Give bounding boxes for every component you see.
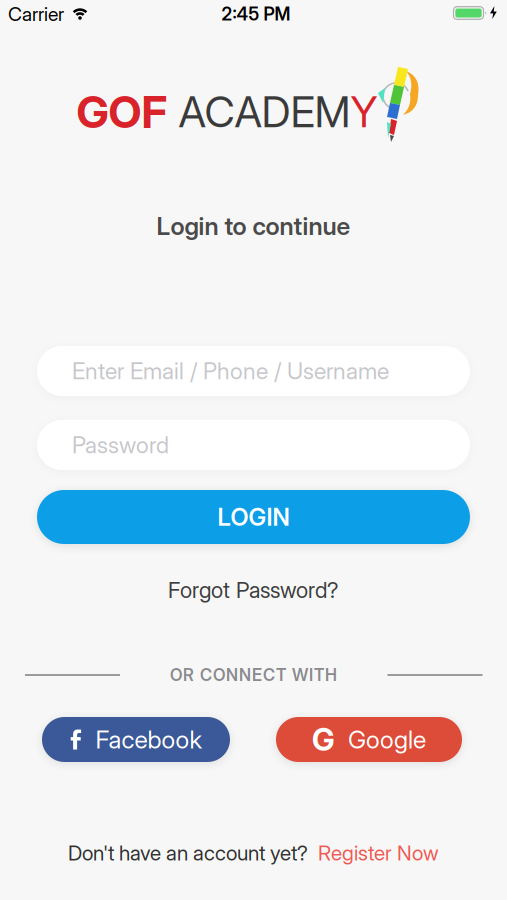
staticText: Register Now [318,840,439,865]
staticText: Enter Email / Phone / Username [72,357,389,385]
staticText: GOF [76,85,167,139]
staticText: Y [350,87,377,137]
staticText: Google [348,725,426,754]
staticText: Facebook [95,725,202,754]
staticText: Password [72,431,169,459]
staticText: G [312,721,335,758]
staticText: ACADEM [167,87,350,137]
staticText: Carrier [8,2,64,26]
staticText: Don't have an account yet? [68,840,308,865]
staticText: LOGIN [217,502,289,531]
staticText: 2:45 PM [221,3,290,25]
staticText: Login to continue [156,211,350,241]
staticText: Forgot Password? [168,577,339,603]
staticText: OR CONNECT WITH [170,665,337,685]
